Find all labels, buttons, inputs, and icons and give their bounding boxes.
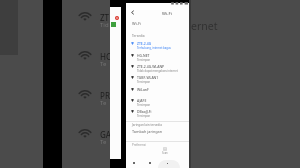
staticText: GA	[100, 129, 112, 140]
staticText: Te	[100, 60, 107, 68]
staticText: Tid	[100, 21, 109, 29]
button[interactable]: DBaoJJ-Fi	[126, 106, 190, 117]
staticText: DBaoJJ-Fi	[137, 109, 152, 114]
staticText: Wi-Fi	[132, 21, 142, 26]
staticText: Tersimpan	[137, 103, 151, 107]
button[interactable]: Scan	[155, 147, 175, 155]
staticText: ZTE-2.4G	[137, 41, 152, 46]
staticText: HG-NET	[137, 53, 150, 58]
staticText: Tersimpan	[137, 80, 151, 84]
button[interactable]: ZTE-2.4G	[126, 38, 190, 49]
staticText: Tersimpan	[137, 114, 151, 118]
button[interactable]: Back	[163, 159, 171, 167]
staticText: TGBF-WLAN1	[137, 75, 159, 80]
staticText: Preferensi	[132, 143, 146, 147]
button[interactable]: ZT	[60, 5, 110, 35]
staticText: Jaringan lain tersedia	[132, 123, 162, 127]
staticText: WiLanF	[137, 87, 149, 92]
staticText: Scan	[162, 151, 168, 155]
staticText: Tambah jaringan	[132, 129, 163, 134]
button[interactable]: Home	[146, 159, 154, 167]
button[interactable]: WiLanF	[126, 84, 190, 95]
button[interactable]: HC	[60, 44, 110, 74]
button[interactable]: ZTE-2.4G-WLANP	[126, 61, 190, 72]
staticText: ZTE-2.4G-WLANP	[137, 64, 165, 69]
staticText: ZT	[100, 12, 110, 23]
button[interactable]: Back	[128, 8, 137, 17]
staticText: PR	[100, 90, 110, 101]
staticText: AJAFE	[137, 98, 147, 103]
staticText: ernet	[191, 19, 218, 33]
button[interactable]: TGBF-WLAN1	[126, 72, 190, 83]
staticText: Wi-Fi	[162, 11, 172, 17]
staticText: Tersimpan	[137, 58, 151, 62]
staticText: Terhubung, internet bagus	[137, 46, 171, 50]
button[interactable]: PR	[60, 83, 110, 113]
staticText: Te	[100, 138, 107, 146]
button[interactable]	[126, 128, 190, 137]
button[interactable]: AJAFE	[126, 95, 190, 106]
staticText: Tersedia	[132, 34, 145, 38]
button[interactable]: Recents	[130, 159, 138, 167]
button[interactable]: HG-NET	[126, 50, 190, 61]
button[interactable]: GA	[60, 122, 110, 152]
staticText: Te	[100, 99, 107, 107]
staticText: HC	[100, 51, 112, 62]
staticText: Tidak dapat mengakses internet	[137, 69, 178, 73]
